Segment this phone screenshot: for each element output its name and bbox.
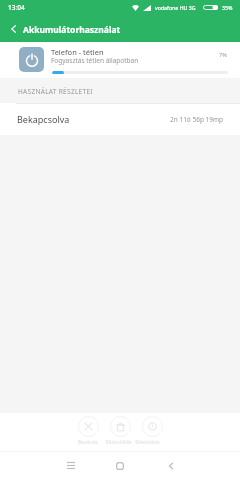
staticText: Részletek [135,438,160,445]
staticText: Fogyasztás tétlen állapotban [51,56,139,65]
staticText: HASZNÁLAT RÉSZLETEI [18,87,93,96]
button[interactable]: Recent apps [51,451,91,480]
button[interactable]: Bezárás [77,415,104,449]
staticText: Akkumulátorhasználat [23,24,121,36]
button[interactable]: Telefon - tétlen [0,42,240,78]
staticText: Bekapcsolva [17,113,70,125]
button[interactable]: Back [0,14,24,42]
button[interactable]: Home [100,451,140,480]
button[interactable]: Eltávolítás [105,415,136,449]
staticText: Bezárás [77,438,98,445]
staticText: 13:04 [8,3,25,12]
staticText: Telefon - tétlen [51,47,104,57]
button[interactable]: Back [151,451,191,480]
staticText: 7% [219,51,227,58]
button[interactable]: Bekapcsolva [0,103,240,135]
staticText: vodafone HU 3G [155,4,196,11]
button[interactable]: Részletek [135,415,168,449]
staticText: 2n 11ó 56p 19mp [170,115,224,124]
staticText: 35% [222,4,233,11]
staticText: Eltávolítás [105,438,132,445]
